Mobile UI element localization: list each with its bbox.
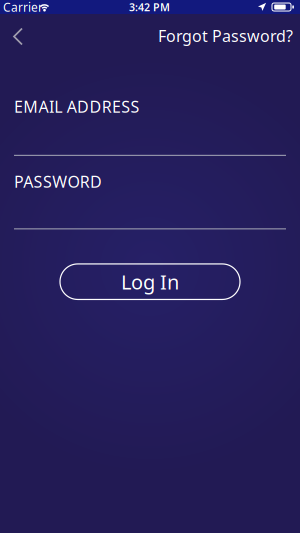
button[interactable]: Forgot Password?	[143, 25, 293, 46]
staticText: Log In	[121, 268, 179, 295]
staticText: Forgot Password?	[158, 25, 293, 46]
staticText: 3:42 PM	[129, 0, 170, 14]
staticText: EMAIL ADDRESS	[14, 96, 140, 117]
button[interactable]: EMAIL ADDRESS	[14, 96, 286, 156]
staticText: Carrier	[3, 0, 43, 15]
button[interactable]: Log In	[60, 264, 240, 299]
staticText: PASSWORD	[14, 171, 102, 192]
button[interactable]	[8, 26, 28, 46]
button[interactable]: PASSWORD	[14, 171, 286, 229]
